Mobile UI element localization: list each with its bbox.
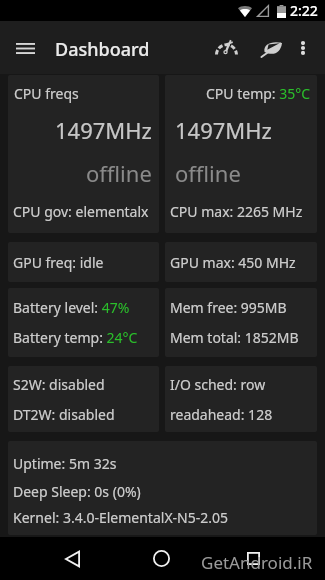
button[interactable]: GPU freq: idle bbox=[8, 242, 159, 282]
staticText: offline bbox=[86, 158, 152, 188]
staticText: Kernel: 3.4.0-ElementalX-N5-2.05 bbox=[13, 508, 229, 527]
button[interactable]: I/O sched: row bbox=[165, 366, 317, 432]
staticText: I/O sched: row bbox=[170, 375, 266, 394]
button[interactable]: CPU temp: 35°C bbox=[165, 75, 317, 233]
staticText: CPU gov: elementalx bbox=[13, 202, 149, 221]
staticText: DT2W: disabled bbox=[13, 405, 115, 424]
button[interactable]: Open navigation drawer bbox=[2, 25, 48, 71]
staticText: CPU max: 2265 MHz bbox=[170, 202, 303, 221]
button[interactable]: GPU max: 450 MHz bbox=[165, 242, 317, 282]
button[interactable]: Mem free: 995MB bbox=[165, 288, 317, 357]
staticText: Dashboard bbox=[55, 37, 150, 62]
staticText: 2:22 bbox=[290, 1, 318, 20]
button[interactable]: Battery saver profile bbox=[248, 25, 294, 71]
staticText: Deep Sleep: 0s (0%) bbox=[13, 482, 141, 501]
staticText: S2W: disabled bbox=[13, 375, 105, 394]
button[interactable]: More options bbox=[283, 28, 323, 68]
staticText: GPU max: 450 MHz bbox=[170, 253, 296, 272]
staticText: Mem total: 1852MB bbox=[170, 328, 299, 347]
staticText: GetAndroid.iR bbox=[201, 551, 313, 574]
button[interactable]: S2W: disabled bbox=[8, 366, 159, 432]
button[interactable]: CPU freqs bbox=[8, 75, 159, 233]
staticText: offline bbox=[175, 158, 241, 188]
staticText: Mem free: 995MB bbox=[170, 298, 287, 317]
button[interactable]: Performance profiles bbox=[203, 25, 249, 71]
staticText: Battery temp: 24°C bbox=[13, 328, 138, 347]
button[interactable]: Battery level: 47% bbox=[8, 288, 159, 357]
staticText: 1497MHz bbox=[175, 115, 272, 145]
staticText: Uptime: 5m 32s bbox=[13, 454, 117, 473]
staticText: CPU temp: 35°C bbox=[206, 84, 311, 103]
staticText: CPU freqs bbox=[14, 84, 79, 103]
button[interactable]: Recent apps bbox=[232, 537, 275, 580]
staticText: readahead: 128 bbox=[170, 405, 273, 424]
button[interactable]: Uptime: 5m 32s bbox=[8, 441, 317, 535]
staticText: GPU freq: idle bbox=[13, 253, 104, 272]
button[interactable]: Home bbox=[140, 537, 183, 580]
button[interactable]: Back bbox=[51, 537, 94, 580]
staticText: Battery level: 47% bbox=[13, 298, 130, 317]
staticText: 1497MHz bbox=[55, 115, 152, 145]
